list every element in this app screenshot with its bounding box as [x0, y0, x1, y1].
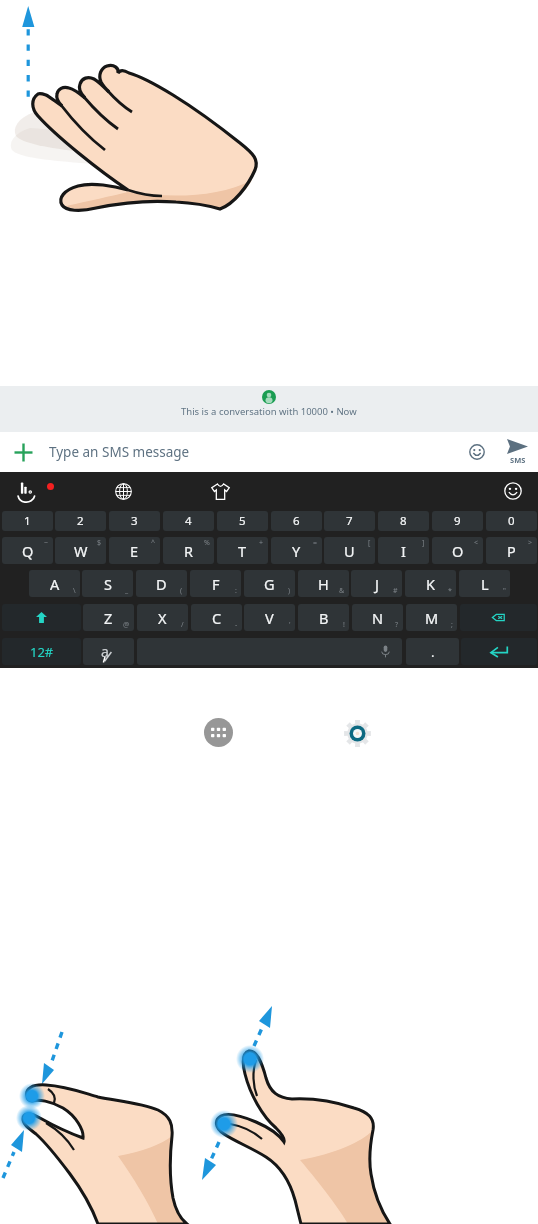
button[interactable]: 7 — [324, 511, 375, 531]
button[interactable]: Backspace — [460, 604, 537, 631]
staticText: < — [474, 538, 479, 548]
button[interactable]: Space — [137, 638, 402, 665]
button[interactable]: 2 — [55, 511, 106, 531]
staticText: # — [393, 586, 398, 596]
button[interactable]: Keyboard theme — [202, 473, 238, 509]
staticText: . — [431, 643, 435, 661]
staticText: ; — [451, 620, 453, 630]
button[interactable]: All apps — [204, 718, 233, 747]
staticText: - — [235, 620, 238, 630]
staticText: Type an SMS message — [49, 443, 190, 461]
staticText: U — [344, 541, 355, 561]
button[interactable]: A — [29, 570, 80, 597]
button[interactable]: 0 — [486, 511, 537, 531]
staticText: = — [313, 538, 318, 548]
staticText: P — [507, 541, 516, 561]
button[interactable]: G — [244, 570, 295, 597]
button[interactable]: E — [109, 537, 160, 564]
staticText: This is a conversation with 10000 • Now — [181, 405, 357, 418]
staticText: 0 — [508, 513, 515, 529]
staticText: B — [319, 608, 329, 628]
staticText: & — [339, 586, 345, 596]
button[interactable]: 8 — [378, 511, 429, 531]
staticText: A — [50, 574, 60, 594]
button[interactable]: Change language — [105, 473, 141, 509]
staticText: 4 — [185, 513, 192, 529]
button[interactable]: 6 — [271, 511, 322, 531]
staticText: _ — [125, 586, 129, 596]
staticText: 2 — [77, 513, 84, 529]
staticText: ) — [288, 586, 291, 596]
button[interactable]: Symbols — [2, 638, 81, 665]
button[interactable]: Send SMS — [497, 432, 538, 472]
button[interactable]: U — [324, 537, 375, 564]
button[interactable]: W — [55, 537, 106, 564]
staticText: + — [259, 538, 264, 548]
staticText: M — [425, 608, 439, 628]
staticText: % — [204, 538, 210, 548]
button[interactable]: F — [190, 570, 241, 597]
button[interactable]: S — [82, 570, 133, 597]
button[interactable]: Settings — [343, 719, 372, 748]
button[interactable]: Emoji — [457, 432, 497, 472]
staticText: K — [426, 574, 435, 594]
staticText: * — [448, 586, 452, 596]
button[interactable]: Q — [2, 537, 53, 564]
button[interactable]: D — [136, 570, 187, 597]
staticText: X — [158, 608, 167, 628]
button[interactable]: Add attachment — [0, 432, 46, 472]
button[interactable]: P — [486, 537, 537, 564]
staticText: 3 — [131, 513, 138, 529]
staticText: H — [318, 574, 329, 594]
button[interactable]: C — [191, 604, 242, 631]
button[interactable]: Handwriting — [83, 638, 134, 665]
button[interactable]: L — [459, 570, 510, 597]
button[interactable]: Gesture typing — [8, 473, 44, 509]
staticText: R — [184, 541, 194, 561]
button[interactable]: 5 — [217, 511, 268, 531]
staticText: @ — [123, 620, 130, 630]
button[interactable]: T — [217, 537, 268, 564]
button[interactable]: Y — [271, 537, 322, 564]
staticText: \ — [73, 586, 76, 596]
staticText: / — [181, 620, 184, 630]
button[interactable]: V — [244, 604, 295, 631]
button[interactable]: H — [298, 570, 349, 597]
button[interactable]: Shift — [2, 604, 81, 631]
staticText: 12# — [30, 643, 54, 661]
button[interactable]: Emoji keyboard — [495, 473, 531, 509]
staticText: L — [481, 574, 489, 594]
button[interactable]: R — [163, 537, 214, 564]
staticText: 8 — [400, 513, 407, 529]
staticText: 1 — [24, 513, 31, 529]
button[interactable]: N — [352, 604, 403, 631]
staticText: SMS — [510, 455, 526, 465]
button[interactable]: O — [432, 537, 483, 564]
button[interactable]: 9 — [432, 511, 483, 531]
staticText: I — [401, 541, 406, 561]
button[interactable]: Z — [83, 604, 134, 631]
staticText: Q — [22, 541, 34, 561]
staticText: C — [212, 608, 222, 628]
button[interactable]: X — [137, 604, 188, 631]
staticText: [ — [368, 538, 371, 548]
button[interactable]: 3 — [109, 511, 160, 531]
button[interactable]: K — [405, 570, 456, 597]
staticText: S — [104, 574, 112, 594]
button[interactable]: . — [406, 638, 459, 665]
staticText: 9 — [454, 513, 461, 529]
button[interactable]: J — [351, 570, 402, 597]
button[interactable]: M — [406, 604, 457, 631]
staticText: V — [265, 608, 274, 628]
staticText: D — [156, 574, 167, 594]
staticText: a — [101, 642, 109, 661]
button[interactable]: Enter — [461, 638, 537, 665]
button[interactable]: 4 — [163, 511, 214, 531]
staticText: > — [528, 538, 533, 548]
staticText: G — [264, 574, 275, 594]
staticText: ~ — [44, 538, 49, 548]
button[interactable]: 1 — [2, 511, 53, 531]
button[interactable]: B — [298, 604, 349, 631]
staticText: Z — [104, 608, 113, 628]
button[interactable]: I — [378, 537, 429, 564]
